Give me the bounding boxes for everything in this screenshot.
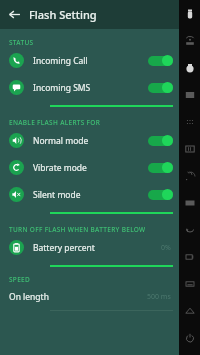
button[interactable]: Sidebar item 11 — [179, 297, 200, 324]
staticText: 0% — [161, 243, 171, 253]
button[interactable]: Sidebar item 3 — [179, 81, 200, 108]
staticText: ENABLE FLASH ALERTS FOR — [9, 118, 101, 127]
staticText: SPEED — [9, 275, 31, 284]
staticText: 500 ms — [147, 292, 171, 302]
button[interactable]: Sidebar item 8 — [179, 216, 200, 243]
button[interactable]: Sidebar item 10 — [179, 270, 200, 297]
button[interactable]: Sidebar item 1 — [179, 27, 200, 54]
staticText: Vibrate mode — [33, 162, 87, 174]
button[interactable]: Vibrate mode — [0, 154, 179, 181]
button[interactable]: Sidebar item 12 — [179, 324, 200, 351]
staticText: TURN OFF FLASH WHEN BATTERY BELOW — [9, 225, 146, 234]
button[interactable]: Toggle — [148, 135, 173, 146]
button[interactable]: Sidebar item 7 — [179, 189, 200, 216]
button[interactable]: Silent mode — [0, 181, 179, 208]
button[interactable]: Sidebar item 9 — [179, 243, 200, 270]
button[interactable]: Battery percent — [0, 234, 179, 261]
button[interactable]: Incoming Call — [0, 47, 179, 74]
button[interactable]: Sidebar item 6 — [179, 162, 200, 189]
button[interactable]: Incoming SMS — [0, 74, 179, 101]
staticText: Battery percent — [33, 242, 95, 254]
button[interactable]: Sidebar item 5 — [179, 135, 200, 162]
staticText: Normal mode — [33, 135, 89, 147]
button[interactable]: Sidebar item 0 — [179, 0, 200, 27]
staticText: Flash Setting — [29, 7, 97, 22]
button[interactable]: Sidebar item 4 — [179, 108, 200, 135]
staticText: STATUS — [9, 38, 34, 47]
staticText: Incoming SMS — [33, 82, 91, 94]
staticText: Silent mode — [33, 189, 81, 201]
button[interactable]: Back — [0, 0, 29, 29]
button[interactable]: Toggle — [148, 162, 173, 173]
staticText: On length — [9, 291, 49, 303]
button[interactable]: Toggle — [148, 189, 173, 200]
button[interactable]: Normal mode — [0, 127, 179, 154]
button[interactable]: Toggle — [148, 82, 173, 93]
button[interactable]: Toggle — [148, 55, 173, 66]
button[interactable]: Sidebar item 2 — [179, 54, 200, 81]
staticText: Incoming Call — [33, 55, 88, 67]
button[interactable]: On length — [0, 284, 179, 310]
